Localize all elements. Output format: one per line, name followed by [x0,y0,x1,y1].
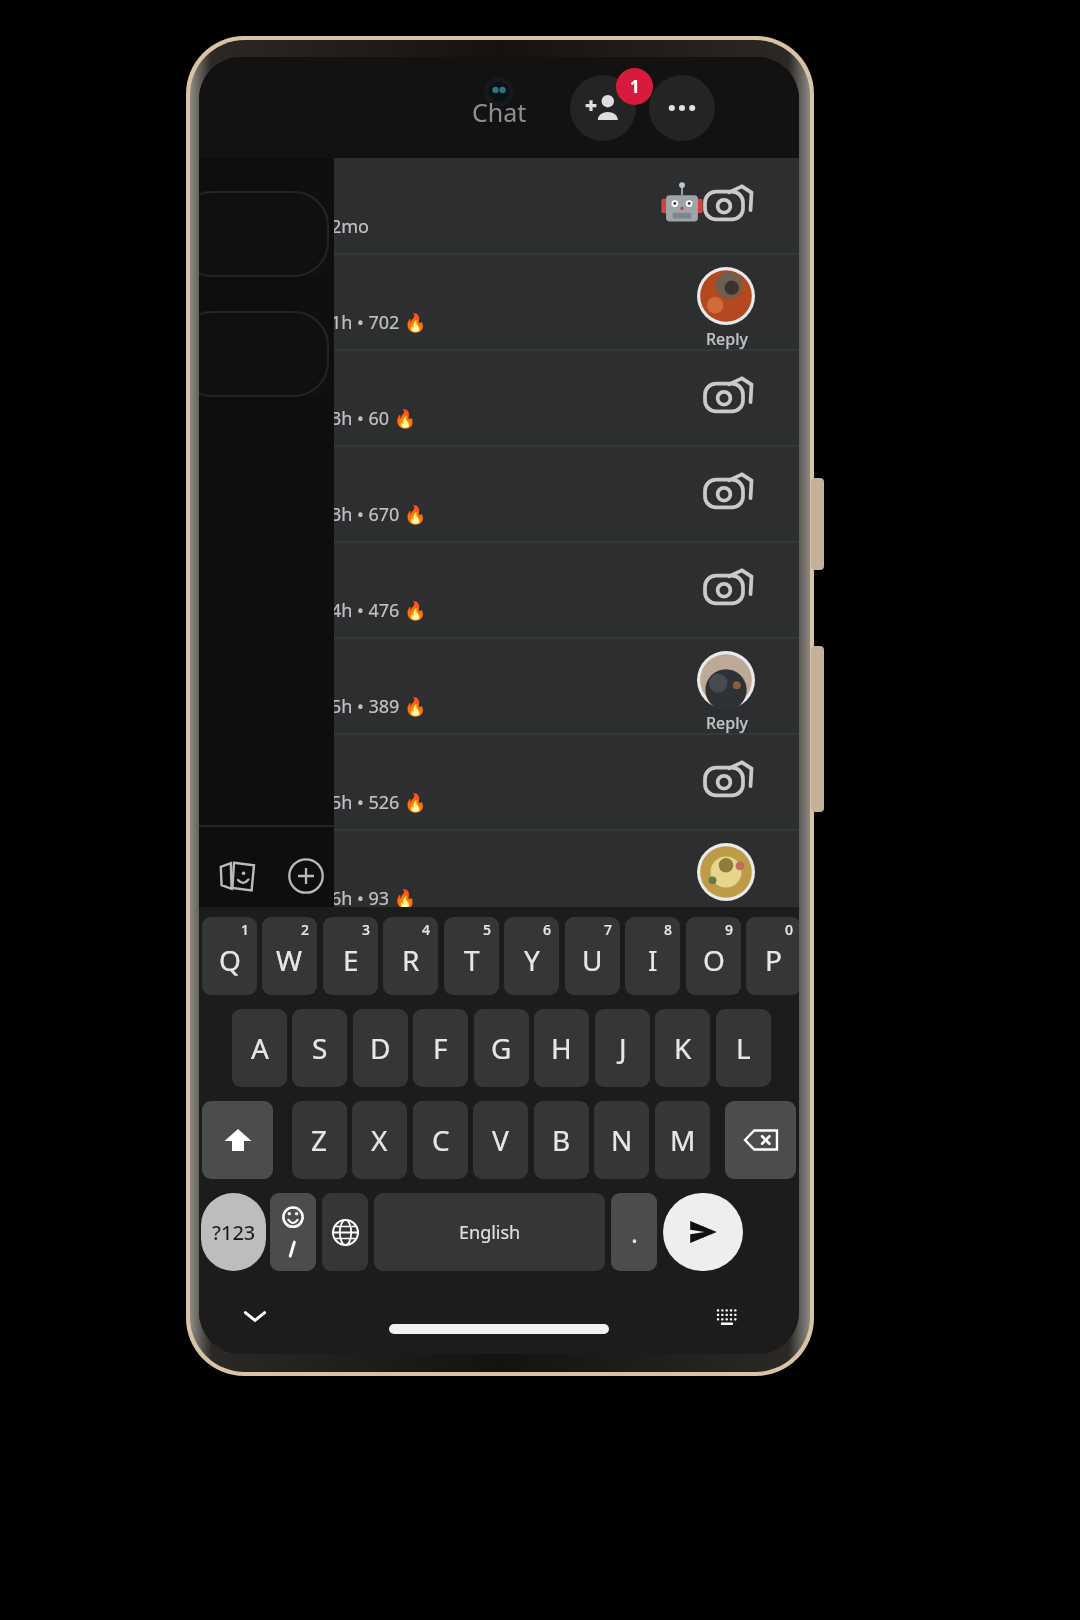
button[interactable]: Add [277,850,335,902]
button[interactable]: r 3 [199,446,799,542]
staticText: ceived • 2mo [261,214,601,242]
button[interactable]: T [444,917,499,995]
button[interactable]: V [473,1101,528,1179]
staticText: r 2 [261,370,581,402]
staticText: r 6 [261,850,581,882]
button[interactable]: A [232,1009,287,1087]
button[interactable]: Send snap [703,758,753,802]
staticText: J [619,1029,627,1067]
button[interactable]: r 5 [199,734,799,830]
button[interactable]: H [534,1009,589,1087]
staticText: X [371,1121,388,1159]
staticText: 2 [301,920,310,939]
staticText: r 1 [261,274,581,306]
button[interactable]: J [595,1009,650,1087]
staticText: A [251,1029,269,1067]
button[interactable]: X [352,1101,407,1179]
staticText: Z [311,1121,328,1159]
staticText: 5 [483,920,492,939]
button[interactable]: More options [649,75,715,141]
button[interactable]: Backspace [725,1101,796,1179]
button[interactable]: Open chat [697,651,755,709]
staticText: C [432,1121,450,1159]
staticText: 6 [543,920,552,939]
staticText: ceived • 4h • 476 🔥 [261,598,601,626]
button[interactable]: Y [504,917,559,995]
staticText: r 4 [261,658,581,690]
staticText: Reply [681,328,773,350]
button[interactable]: D [353,1009,408,1087]
button[interactable]: r 4 [199,638,799,734]
staticText: 1 [241,920,250,939]
button[interactable] [199,191,329,277]
button[interactable]: Shift [202,1101,273,1179]
staticText: . [631,1215,638,1250]
button[interactable]: Send snap [703,470,753,514]
button[interactable]: K [655,1009,710,1087]
staticText: W [276,941,303,979]
button[interactable]: r x [199,542,799,638]
staticText: Y [524,941,540,979]
button[interactable]: N [594,1101,649,1179]
staticText: K [674,1029,692,1067]
staticText: English [459,1220,521,1245]
button[interactable]: Send [663,1193,743,1271]
button[interactable] [199,311,329,397]
staticText: U [582,941,603,979]
button[interactable]: Open chat [697,843,755,901]
button[interactable]: S [292,1009,347,1087]
staticText: S [312,1029,328,1067]
button[interactable]: r 2 [199,350,799,446]
button[interactable]: Change language [322,1193,368,1271]
button[interactable]: r 6 [199,830,799,926]
button[interactable]: . [611,1193,657,1271]
staticText: D [370,1029,391,1067]
button[interactable]: Send snap [703,374,753,418]
button[interactable]: L [716,1009,771,1087]
button[interactable]: G [474,1009,529,1087]
staticText: 7 [604,920,613,939]
button[interactable]: B [534,1101,589,1179]
button[interactable]: Add friend [570,75,636,141]
staticText: ceived • 3h • 60 🔥 [261,406,601,434]
staticText: E [343,941,359,979]
staticText: r 5 [261,754,581,786]
button[interactable]: U [565,917,620,995]
button[interactable]: Emoji [270,1193,316,1271]
button[interactable]: P [746,917,799,995]
button[interactable]: AI [199,158,799,254]
staticText: T [464,941,480,979]
button[interactable]: r 1 [199,254,799,350]
button[interactable]: M [655,1101,710,1179]
button[interactable]: E [323,917,378,995]
button[interactable]: Open chat [697,267,755,325]
staticText: ceived • 5h • 526 🔥 [261,790,601,818]
button[interactable]: W [262,917,317,995]
staticText: P [765,941,782,979]
button[interactable]: I [625,917,680,995]
button[interactable]: Switch keyboard [697,1295,757,1337]
button[interactable]: O [686,917,741,995]
staticText: Reply [681,712,773,734]
button[interactable]: Send snap [703,182,753,226]
staticText: R [402,941,420,979]
button[interactable]: F [413,1009,468,1087]
staticText: 9 [725,920,734,939]
button[interactable]: ?123 [201,1193,266,1271]
button[interactable]: C [413,1101,468,1179]
button[interactable]: Send snap [703,566,753,610]
staticText: M [670,1121,696,1159]
staticText: r 3 [261,466,581,498]
staticText: AI [261,178,581,210]
button[interactable]: R [383,917,438,995]
staticText: L [736,1029,751,1067]
button[interactable]: Hide keyboard [225,1295,285,1337]
button[interactable]: Q [202,917,257,995]
button[interactable]: Z [292,1101,347,1179]
button[interactable]: English [374,1193,605,1271]
button[interactable]: Stickers [209,850,267,902]
staticText: ceived • 1h • 702 🔥 [261,310,601,338]
staticText: ceived • 5h • 389 🔥 [261,694,601,722]
staticText: F [433,1029,448,1067]
staticText: 8 [664,920,673,939]
